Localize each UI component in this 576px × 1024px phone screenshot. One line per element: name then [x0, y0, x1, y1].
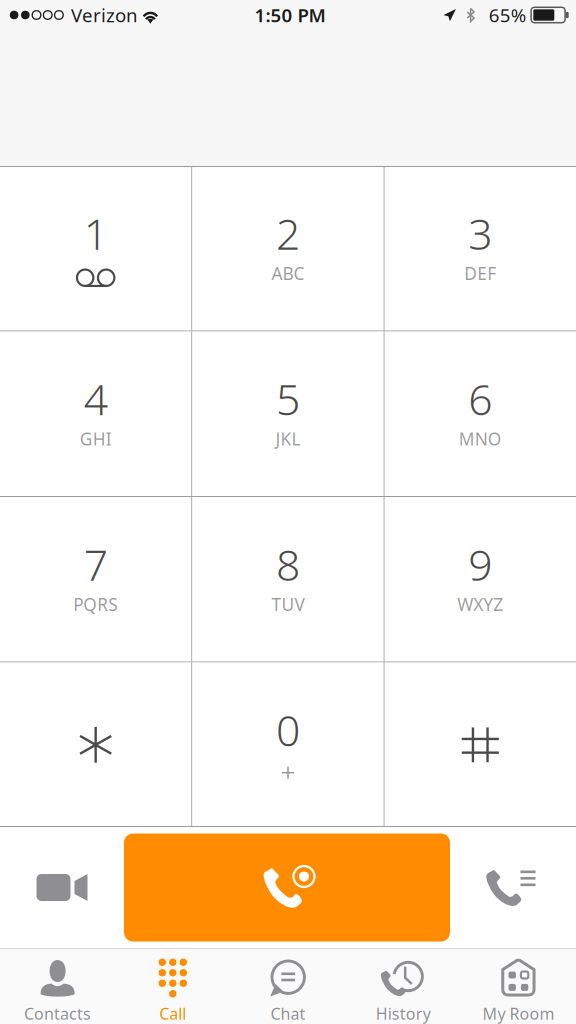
staticText: WXYZ — [457, 593, 503, 616]
staticText: 1:50 PM — [254, 3, 325, 27]
staticText: History — [376, 1003, 431, 1024]
button[interactable]: 2 — [192, 166, 384, 330]
staticText: DEF — [464, 262, 496, 285]
staticText: My Room — [482, 1003, 554, 1024]
staticText: PQRS — [73, 593, 118, 616]
button[interactable]: My Room — [461, 949, 576, 1024]
button[interactable]: Call — [124, 827, 450, 948]
button[interactable]: Video call — [0, 827, 124, 948]
staticText: 0 — [276, 701, 300, 758]
staticText: GHI — [80, 427, 112, 450]
button[interactable]: 4 — [0, 331, 191, 496]
staticText: 7 — [84, 536, 108, 593]
button[interactable]: 9 — [385, 497, 576, 661]
button[interactable]: 5 — [192, 331, 384, 496]
staticText: 1 — [84, 205, 108, 262]
button[interactable]: 6 — [385, 331, 576, 496]
staticText: ABC — [271, 262, 304, 285]
button[interactable]: Call options — [450, 827, 576, 948]
staticText: Call — [159, 1003, 186, 1024]
staticText: MNO — [459, 427, 502, 450]
staticText: 5 — [276, 370, 300, 427]
button[interactable]: History — [346, 949, 461, 1024]
button[interactable]: 8 — [192, 497, 384, 661]
staticText: Chat — [270, 1003, 305, 1024]
staticText: 6 — [468, 370, 492, 427]
button[interactable] — [0, 662, 191, 827]
staticText: JKL — [275, 427, 300, 450]
staticText: 3 — [468, 205, 492, 262]
staticText: Verizon — [71, 3, 138, 27]
staticText: 65% — [489, 3, 527, 27]
staticText: Contacts — [24, 1003, 91, 1024]
staticText: 4 — [84, 370, 108, 427]
button[interactable]: 7 — [0, 497, 191, 661]
button[interactable]: 3 — [385, 166, 576, 330]
button[interactable]: 0 — [192, 662, 384, 827]
staticText: TUV — [271, 593, 304, 616]
button[interactable] — [385, 662, 576, 827]
staticText: 2 — [276, 205, 300, 262]
staticText: 9 — [468, 536, 492, 593]
button[interactable]: 1 — [0, 166, 191, 330]
button[interactable]: Call — [115, 949, 230, 1024]
button[interactable]: Contacts — [0, 949, 115, 1024]
button[interactable]: Chat — [230, 949, 346, 1024]
staticText: 8 — [276, 536, 300, 593]
